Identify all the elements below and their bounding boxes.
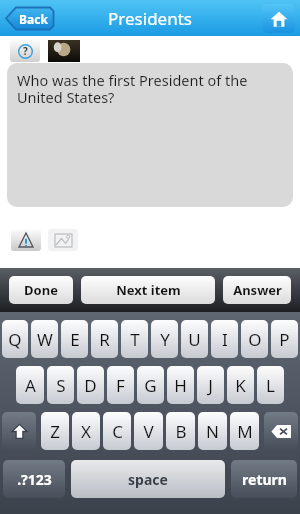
button[interactable]: A — [16, 366, 44, 404]
button[interactable]: U — [181, 320, 208, 358]
staticText: C — [112, 420, 123, 443]
button[interactable]: I — [211, 320, 238, 358]
staticText: Back — [19, 11, 48, 27]
button[interactable]: space — [71, 460, 225, 498]
button[interactable]: Home — [262, 4, 295, 33]
button[interactable]: G — [137, 366, 164, 404]
button[interactable]: M — [230, 412, 259, 450]
staticText: I — [222, 328, 228, 351]
button[interactable]: F — [107, 366, 134, 404]
button[interactable]: J — [197, 366, 224, 404]
button[interactable]: .?123 — [3, 460, 65, 498]
staticText: X — [81, 420, 91, 443]
button[interactable]: Z — [41, 412, 69, 450]
button[interactable]: C — [103, 412, 131, 450]
button[interactable]: R — [91, 320, 118, 358]
button[interactable]: Done — [9, 276, 73, 304]
staticText: F — [116, 374, 125, 397]
button[interactable]: Y — [151, 320, 178, 358]
staticText: R — [99, 328, 110, 351]
button[interactable]: Shift — [2, 412, 36, 450]
staticText: G — [144, 374, 157, 397]
button[interactable]: Next item — [81, 276, 215, 304]
button[interactable]: Help — [10, 40, 40, 62]
staticText: J — [208, 374, 213, 397]
button[interactable]: V — [134, 412, 163, 450]
button[interactable]: B — [166, 412, 195, 450]
staticText: W — [37, 328, 53, 351]
button[interactable]: Who was the first President of the Unite… — [7, 63, 293, 207]
staticText: Done — [24, 281, 58, 299]
staticText: O — [248, 328, 262, 351]
staticText: V — [143, 420, 154, 443]
button[interactable]: D — [77, 366, 104, 404]
staticText: N — [206, 420, 219, 443]
button[interactable]: return — [231, 460, 297, 498]
staticText: L — [266, 374, 275, 397]
button[interactable]: S — [47, 366, 74, 404]
button[interactable]: P — [271, 320, 298, 358]
staticText: Answer — [233, 281, 282, 299]
staticText: ? — [23, 44, 28, 58]
button[interactable]: L — [257, 366, 284, 404]
staticText: D — [84, 374, 97, 397]
button[interactable]: H — [167, 366, 194, 404]
staticText: T — [130, 328, 140, 351]
staticText: return — [242, 470, 287, 489]
button[interactable]: Q — [2, 320, 28, 358]
staticText: S — [56, 374, 66, 397]
button[interactable]: E — [61, 320, 88, 358]
button[interactable]: W — [31, 320, 58, 358]
staticText: A — [25, 374, 36, 397]
button[interactable]: Portrait — [48, 40, 80, 62]
button[interactable]: T — [121, 320, 148, 358]
button[interactable]: X — [72, 412, 100, 450]
staticText: space — [128, 470, 168, 489]
staticText: K — [235, 374, 246, 397]
button[interactable]: K — [227, 366, 254, 404]
staticText: Presidents — [108, 7, 192, 30]
staticText: Y — [160, 328, 170, 351]
button[interactable]: Answer — [223, 276, 291, 304]
staticText: Z — [50, 420, 60, 443]
button[interactable]: Warning — [11, 229, 41, 251]
staticText: M — [237, 420, 253, 443]
staticText: Who was the first President of the Unite… — [17, 70, 293, 107]
button[interactable]: Back — [5, 6, 55, 31]
staticText: Q — [8, 328, 22, 351]
staticText: Next item — [116, 281, 181, 299]
staticText: P — [279, 328, 290, 351]
button[interactable]: Image — [48, 229, 78, 251]
button[interactable]: Backspace — [264, 412, 298, 450]
staticText: E — [70, 328, 80, 351]
button[interactable]: O — [241, 320, 268, 358]
staticText: .?123 — [17, 470, 52, 489]
staticText: H — [174, 374, 187, 397]
button[interactable]: N — [198, 412, 227, 450]
staticText: U — [188, 328, 201, 351]
staticText: B — [175, 420, 187, 443]
